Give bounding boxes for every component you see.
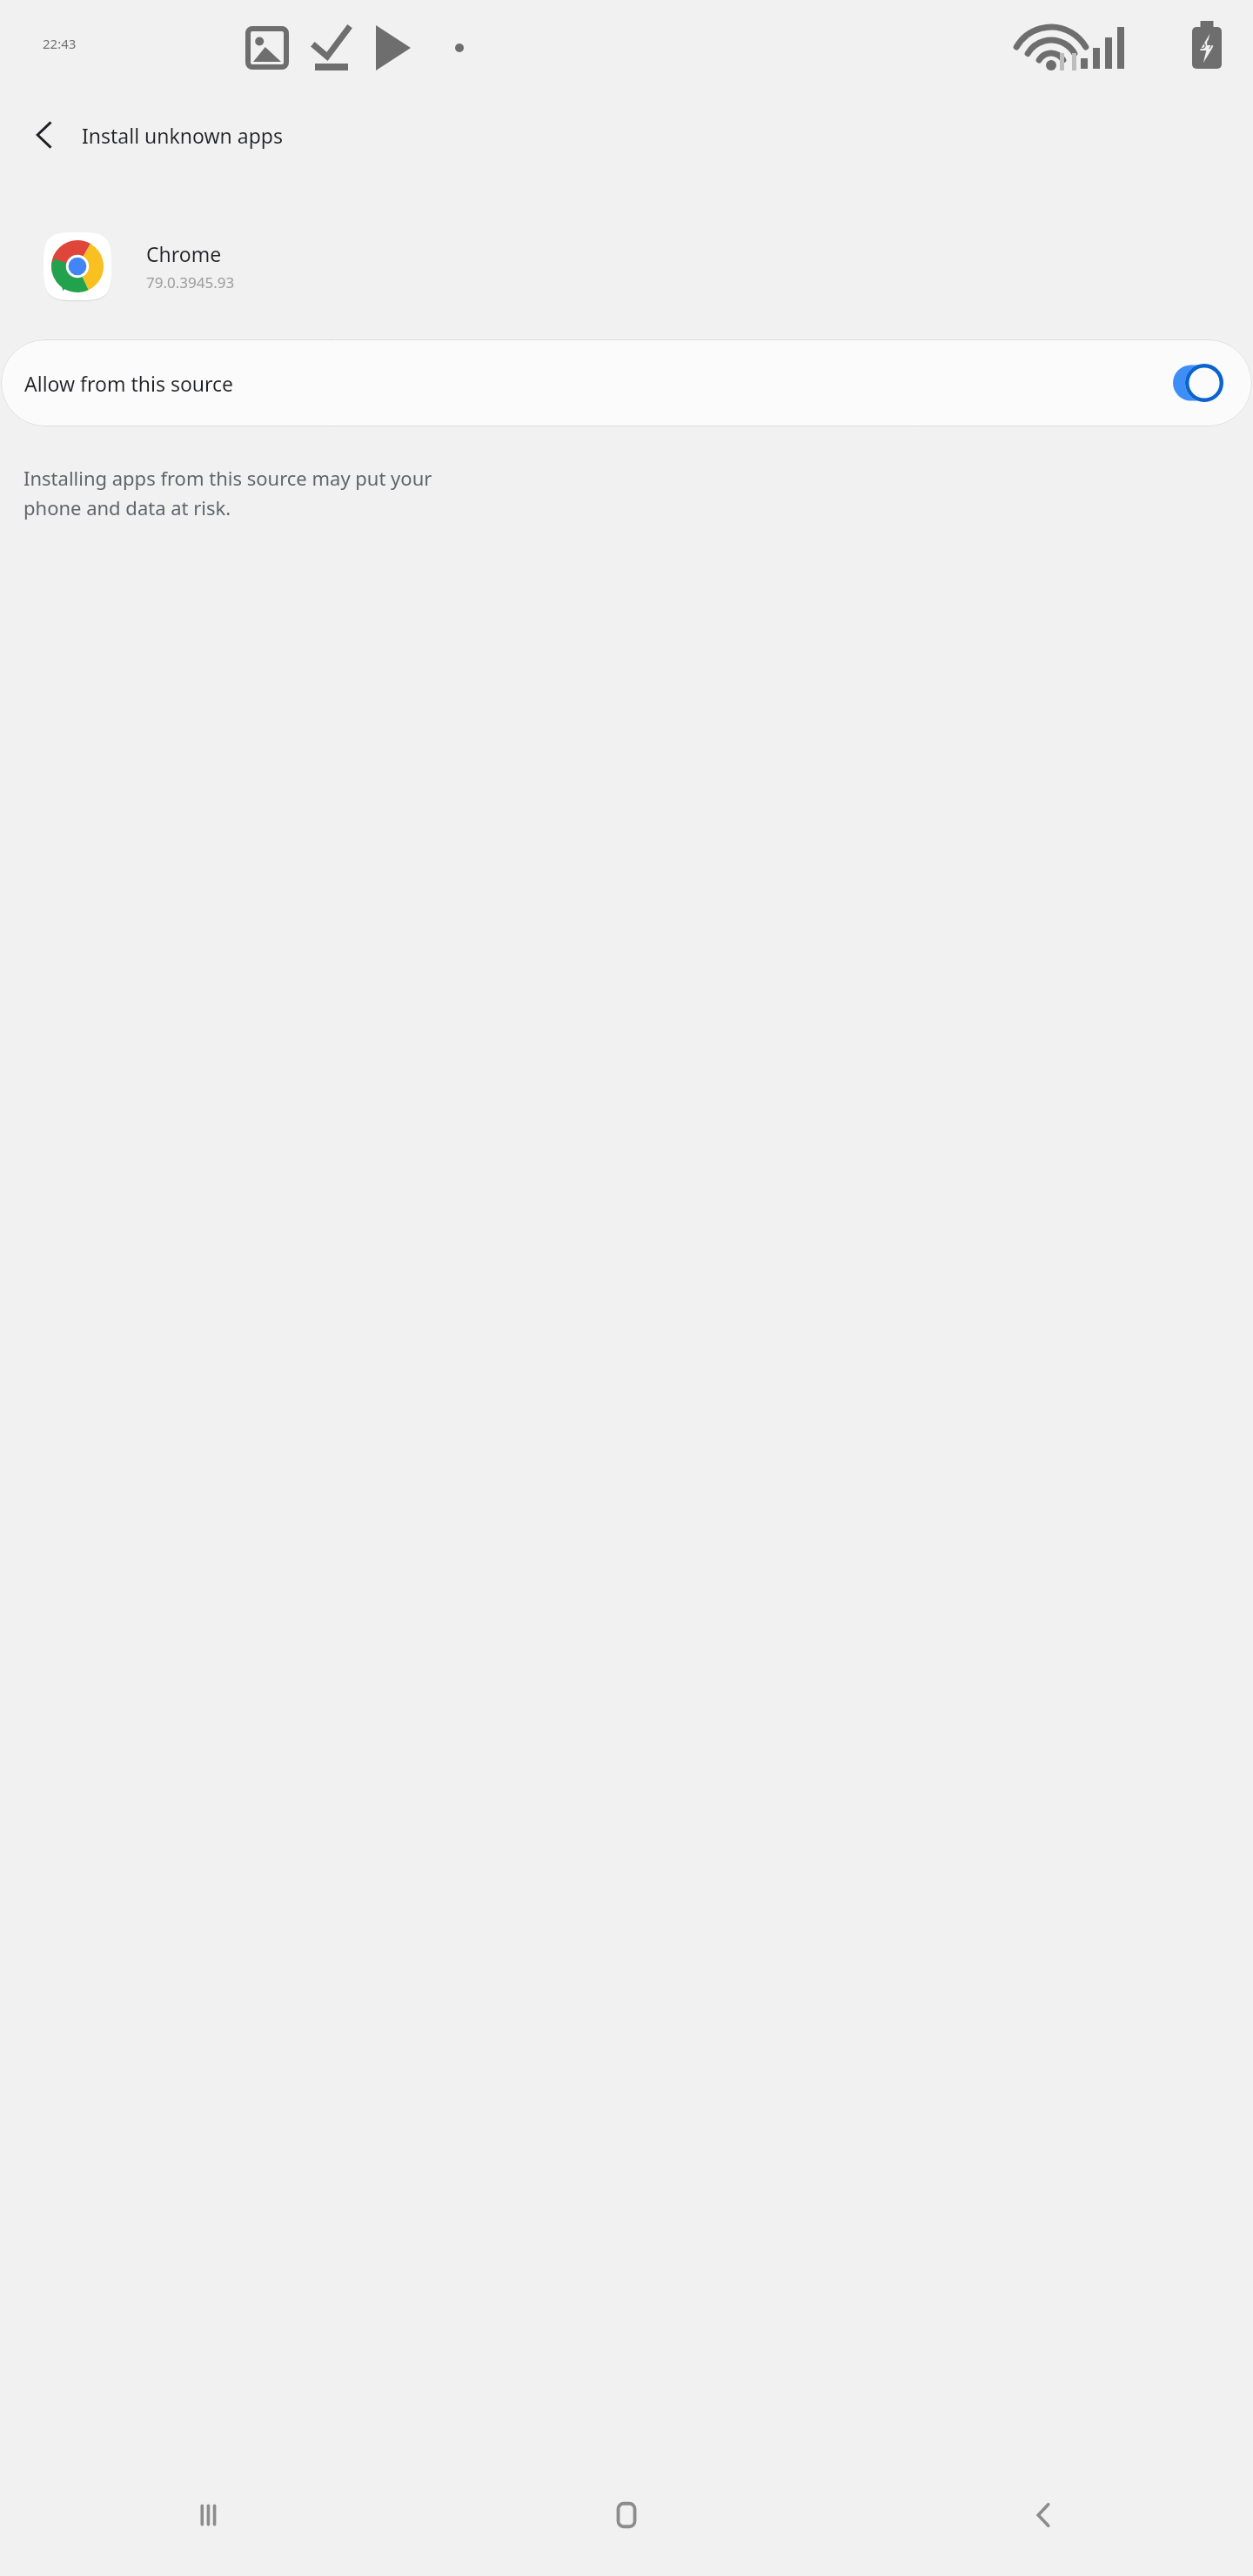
staticText: 22:43 xyxy=(43,35,77,52)
staticText: 79.0.3945.93 xyxy=(146,272,235,292)
staticText: Allow from this source xyxy=(24,370,234,397)
button[interactable]: Home xyxy=(418,2454,835,2576)
staticText: 5% xyxy=(1199,35,1218,52)
button[interactable]: Back xyxy=(835,2454,1253,2576)
staticText: Chrome xyxy=(146,240,222,267)
other: Allow from this source toggle, on xyxy=(1173,364,1223,402)
button[interactable]: Allow from this source xyxy=(1,339,1252,426)
button[interactable]: Recent apps xyxy=(0,2454,418,2576)
staticText: Install unknown apps xyxy=(82,122,283,149)
button[interactable]: Navigate up xyxy=(23,112,68,158)
button[interactable]: Chrome xyxy=(0,225,1253,308)
staticText: Installing apps from this source may put… xyxy=(23,465,432,520)
